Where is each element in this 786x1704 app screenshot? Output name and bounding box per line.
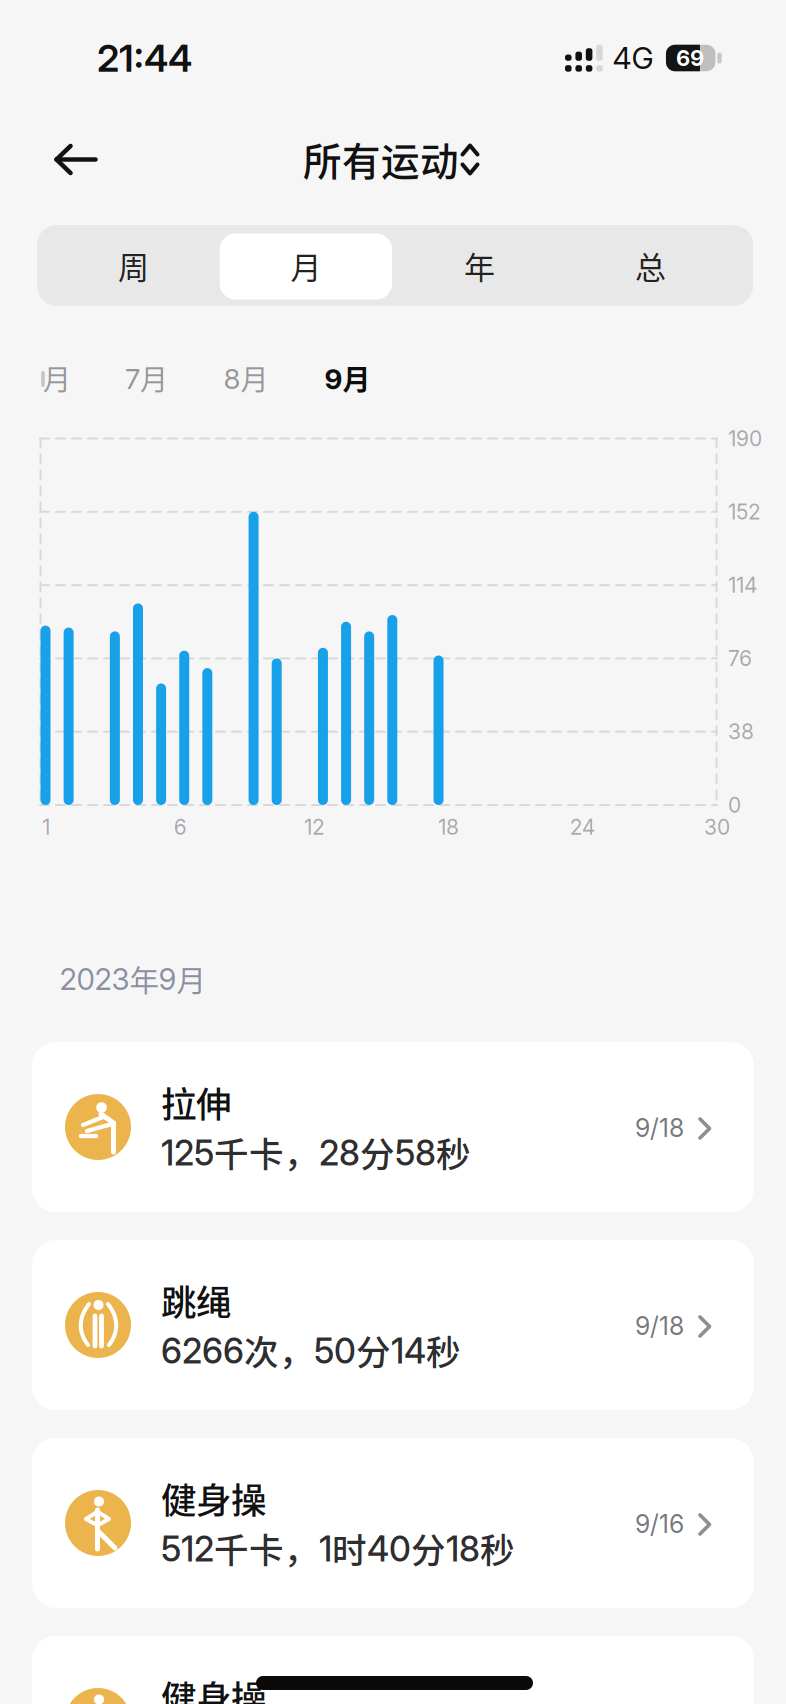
button[interactable]: 月: [0, 0, 786, 1704]
button[interactable]: 所有运动: [0, 0, 786, 1704]
staticText: 30: [704, 814, 730, 840]
staticText: 健身操: [161, 1472, 266, 1524]
staticText: 152: [728, 499, 761, 524]
staticText: 4G: [612, 40, 653, 76]
staticText: 跳绳: [161, 1274, 231, 1326]
staticText: 69: [676, 45, 704, 71]
staticText: 76: [728, 646, 752, 671]
staticText: 总: [635, 243, 666, 288]
button[interactable]: 健身操: [0, 0, 786, 1704]
staticText: 1: [42, 814, 50, 840]
staticText: 年: [464, 243, 495, 288]
staticText: 21:44: [97, 35, 192, 81]
staticText: 114: [728, 572, 758, 598]
staticText: 周: [118, 243, 149, 288]
staticText: 12: [304, 814, 325, 840]
staticText: 8月: [223, 358, 268, 398]
staticText: 7月: [125, 358, 168, 398]
staticText: 所有运动: [303, 131, 459, 187]
button[interactable]: 8月: [0, 0, 786, 1704]
button[interactable]: 7月: [0, 0, 786, 1704]
button[interactable]: 9月: [0, 0, 786, 1704]
staticText: 月: [43, 358, 71, 398]
staticText: 512千卡，1时40分18秒: [161, 1523, 515, 1573]
staticText: 拉伸: [161, 1076, 231, 1128]
staticText: 190: [728, 426, 762, 451]
staticText: 6266次，50分14秒: [161, 1325, 461, 1375]
staticText: 0: [728, 792, 741, 818]
button[interactable]: 拉伸: [0, 0, 786, 1704]
button[interactable]: 周: [0, 0, 786, 1704]
staticText: 24: [570, 814, 596, 840]
staticText: 健身操: [161, 1670, 266, 1704]
button[interactable]: 总: [0, 0, 786, 1704]
button[interactable]: 月: [0, 0, 786, 1704]
staticText: 2023年9月: [59, 957, 205, 1000]
button[interactable]: 年: [0, 0, 786, 1704]
staticText: 38: [728, 719, 754, 744]
staticText: 9/18: [635, 1113, 684, 1143]
button[interactable]: [0, 0, 786, 1704]
staticText: 9/18: [635, 1311, 684, 1341]
staticText: 125千卡，28分58秒: [161, 1127, 471, 1177]
button[interactable]: 跳绳: [0, 0, 786, 1704]
button[interactable]: 健身操: [0, 0, 786, 1704]
staticText: 9月: [324, 358, 370, 398]
staticText: 6: [174, 814, 187, 840]
staticText: 9/16: [635, 1509, 684, 1539]
staticText: 18: [438, 814, 459, 840]
staticText: 月: [290, 243, 321, 288]
